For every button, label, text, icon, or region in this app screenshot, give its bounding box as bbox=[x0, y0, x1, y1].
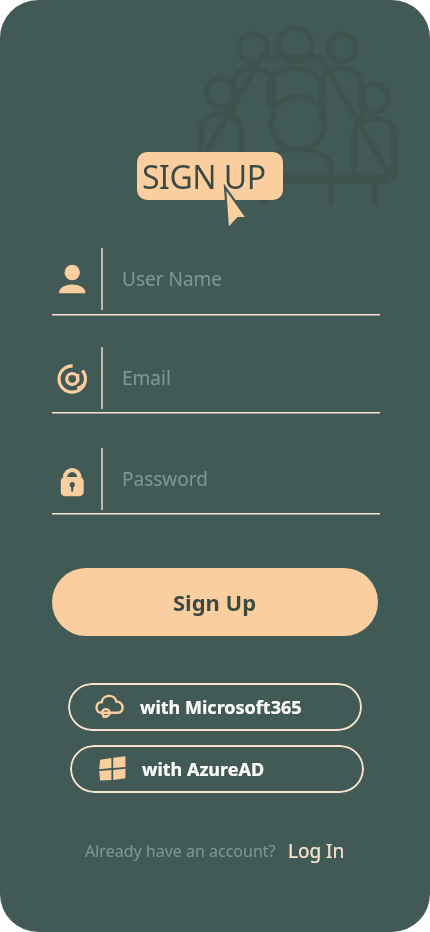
button[interactable]: Email bbox=[52, 345, 380, 411]
button[interactable]: User Name bbox=[52, 246, 380, 312]
button[interactable]: with Microsoft365 bbox=[68, 683, 362, 731]
staticText: Password bbox=[122, 466, 208, 492]
staticText: Sign Up bbox=[173, 587, 257, 617]
button[interactable]: with AzureAD bbox=[70, 745, 364, 793]
staticText: Email bbox=[122, 365, 171, 391]
staticText: with Microsoft365 bbox=[140, 695, 302, 720]
button[interactable]: Password bbox=[52, 446, 380, 512]
button[interactable]: Log In bbox=[288, 838, 345, 864]
staticText: User Name bbox=[122, 266, 223, 292]
button[interactable]: Sign Up bbox=[52, 568, 378, 636]
staticText: Already have an account? bbox=[85, 840, 276, 862]
staticText: SIGN UP bbox=[142, 155, 266, 199]
staticText: Log In bbox=[288, 838, 345, 864]
staticText: with AzureAD bbox=[142, 757, 265, 782]
